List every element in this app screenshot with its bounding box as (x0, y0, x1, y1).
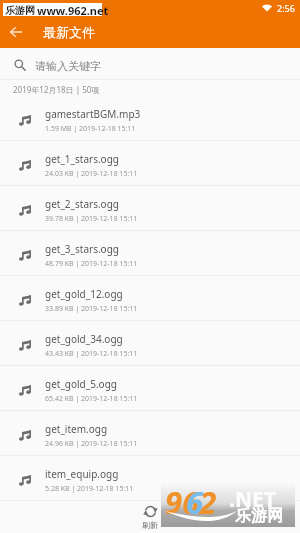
staticText: 请输入关键字 (35, 59, 101, 73)
staticText: 962 (165, 481, 217, 523)
staticText: 39.78 KB | 2019-12-18 15:11 (45, 214, 138, 224)
staticText: get_item.ogg (45, 422, 108, 436)
button[interactable]: get_item.ogg (0, 411, 300, 455)
staticText: 2019年12月18日 | 50项 (13, 84, 100, 95)
staticText: 48.79 KB | 2019-12-18 15:11 (45, 259, 138, 269)
staticText: get_gold_12.ogg (45, 287, 123, 301)
button[interactable]: 刷新 (128, 502, 172, 533)
button[interactable]: get_2_stars.ogg (0, 186, 300, 230)
staticText: get_2_stars.ogg (45, 197, 119, 211)
staticText: 43.43 KB | 2019-12-18 15:11 (45, 349, 138, 359)
button[interactable]: get_gold_12.ogg (0, 276, 300, 320)
staticText: 24.96 KB | 2019-12-18 15:11 (45, 439, 138, 449)
button[interactable]: get_gold_34.ogg (0, 321, 300, 365)
staticText: 65.42 KB | 2019-12-18 15:11 (45, 394, 138, 404)
button[interactable]: get_gold_5.ogg (0, 366, 300, 410)
staticText: 乐游网 (235, 506, 283, 526)
staticText: gamestartBGM.mp3 (45, 107, 141, 121)
staticText: 33.89 KB | 2019-12-18 15:11 (45, 304, 138, 314)
staticText: get_3_stars.ogg (45, 242, 119, 256)
button[interactable]: get_1_stars.ogg (0, 141, 300, 185)
button[interactable]: gamestartBGM.mp3 (0, 96, 300, 140)
button[interactable]: get_3_stars.ogg (0, 231, 300, 275)
staticText: 乐游网 (5, 4, 35, 17)
staticText: get_1_stars.ogg (45, 152, 119, 166)
staticText: get_gold_34.ogg (45, 332, 123, 346)
staticText: 最新文件 (43, 24, 95, 40)
staticText: 刷新 (142, 520, 158, 530)
button[interactable]: Back (0, 16, 32, 48)
staticText: 24.03 KB | 2019-12-18 15:11 (45, 169, 138, 179)
staticText: 5.28 KB | 2019-12-18 15:11 (45, 484, 134, 494)
staticText: www.962.net (37, 3, 109, 16)
button[interactable]: 请输入关键字 (0, 48, 300, 79)
staticText: 2:56 (277, 2, 295, 14)
staticText: .NET (229, 485, 276, 514)
staticText: 6 (186, 481, 204, 523)
staticText: get_gold_5.ogg (45, 377, 117, 391)
button[interactable]: item_equip.ogg (0, 456, 300, 500)
staticText: item_equip.ogg (45, 467, 119, 481)
staticText: 1.59 MB | 2019-12-18 15:11 (45, 124, 136, 134)
